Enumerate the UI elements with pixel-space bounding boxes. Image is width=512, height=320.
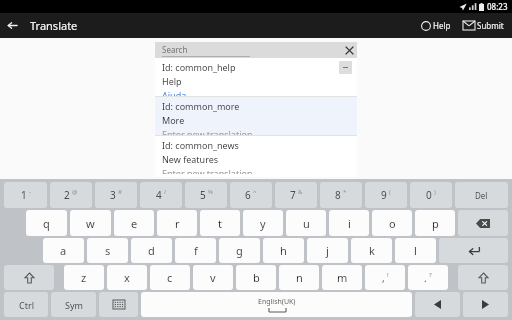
button[interactable]: w [70,210,111,236]
button[interactable]: i [329,210,369,236]
staticText: ! [387,271,389,279]
staticText: Help [433,20,451,31]
button[interactable]: x [107,265,147,290]
staticText: , [382,271,385,285]
button[interactable]: v [193,265,233,290]
button[interactable]: d [131,238,172,263]
staticText: t [218,216,222,231]
staticText: a [60,243,67,258]
staticText: Id: common_news [162,139,239,151]
button[interactable]: Submit [461,17,506,34]
button[interactable]: a [43,238,84,263]
button[interactable]: Id: common_more [155,97,357,135]
button[interactable]: n [279,265,319,290]
staticText: Enter new translation [162,128,253,135]
button[interactable]: Space, English(UK) [141,292,412,317]
staticText: o [389,216,396,231]
button[interactable]: 1 [4,182,47,208]
button[interactable]: Change keyboard [99,292,138,317]
staticText: i [348,216,351,231]
button[interactable]: 3 [95,182,137,208]
button[interactable]: Backspace [458,210,508,236]
staticText: Sym [65,299,83,311]
staticText: f [194,243,198,258]
button[interactable]: Id: common_news [155,136,357,174]
button[interactable]: z [64,265,104,290]
staticText: y [260,216,266,231]
button[interactable]: g [219,238,260,263]
staticText: - [29,188,31,196]
button[interactable]: Left [415,292,460,317]
staticText: 08:23 [487,1,508,12]
button[interactable]: o [372,210,412,236]
staticText: h [280,243,287,258]
button[interactable]: b [236,265,276,290]
button[interactable]: 4 [140,182,182,208]
button[interactable]: Shift right [458,265,508,290]
button[interactable]: Enter [439,238,508,263]
button[interactable]: j [307,238,348,263]
button[interactable]: m [322,265,362,290]
staticText: p [432,216,439,231]
button[interactable]: 2 [50,182,92,208]
staticText: u [303,216,310,231]
staticText: q [43,216,50,231]
button[interactable]: Back [0,13,25,38]
button[interactable]: 9 [365,182,407,208]
button[interactable]: Del [455,182,508,208]
staticText: # [118,188,122,196]
staticText: Submit [477,20,504,31]
staticText: & [298,188,303,196]
staticText: 4 [156,188,162,202]
button[interactable]: s [87,238,128,263]
staticText: Search [162,44,188,55]
staticText: ^ [253,188,257,196]
staticText: Translate [30,18,78,33]
staticText: New features [162,153,219,165]
staticText: b [253,270,260,285]
button[interactable]: c [150,265,190,290]
button[interactable]: Id: common_help [155,58,357,96]
staticText: % [208,188,213,196]
staticText: 3 [110,188,116,202]
button[interactable]: r [157,210,197,236]
button[interactable]: 6 [230,182,272,208]
button[interactable]: Sym [51,292,96,317]
button[interactable]: q [26,210,67,236]
button[interactable]: Ctrl [4,292,48,317]
button[interactable]: 7 [275,182,317,208]
staticText: m [337,270,348,285]
staticText: 2 [64,188,70,202]
button[interactable]: h [263,238,304,263]
staticText: k [369,243,375,258]
staticText: d [148,243,155,258]
button[interactable]: , [365,265,405,290]
staticText: 8 [335,188,341,202]
button[interactable]: u [286,210,326,236]
button[interactable]: p [415,210,455,236]
button[interactable]: . [408,265,448,290]
staticText: 5 [200,188,206,202]
staticText: x [124,270,130,285]
button[interactable]: 5 [185,182,227,208]
button[interactable]: t [200,210,240,236]
staticText: Ctrl [19,299,34,311]
button[interactable]: Close [341,42,357,58]
staticText: / [164,188,167,196]
button[interactable]: Help [419,17,453,34]
staticText: 9 [381,188,387,202]
button[interactable]: f [175,238,216,263]
button[interactable]: Shift [4,265,54,290]
button[interactable]: 8 [320,182,362,208]
button[interactable]: Collapse [339,61,352,74]
button[interactable]: Right [463,292,508,317]
staticText: Id: common_help [162,61,236,73]
button[interactable]: e [114,210,154,236]
button[interactable]: k [351,238,392,263]
button[interactable]: l [395,238,436,263]
staticText: 1 [21,188,27,202]
button[interactable]: y [243,210,283,236]
staticText: n [296,270,303,285]
staticText: 6 [245,188,251,202]
button[interactable]: 0 [410,182,452,208]
